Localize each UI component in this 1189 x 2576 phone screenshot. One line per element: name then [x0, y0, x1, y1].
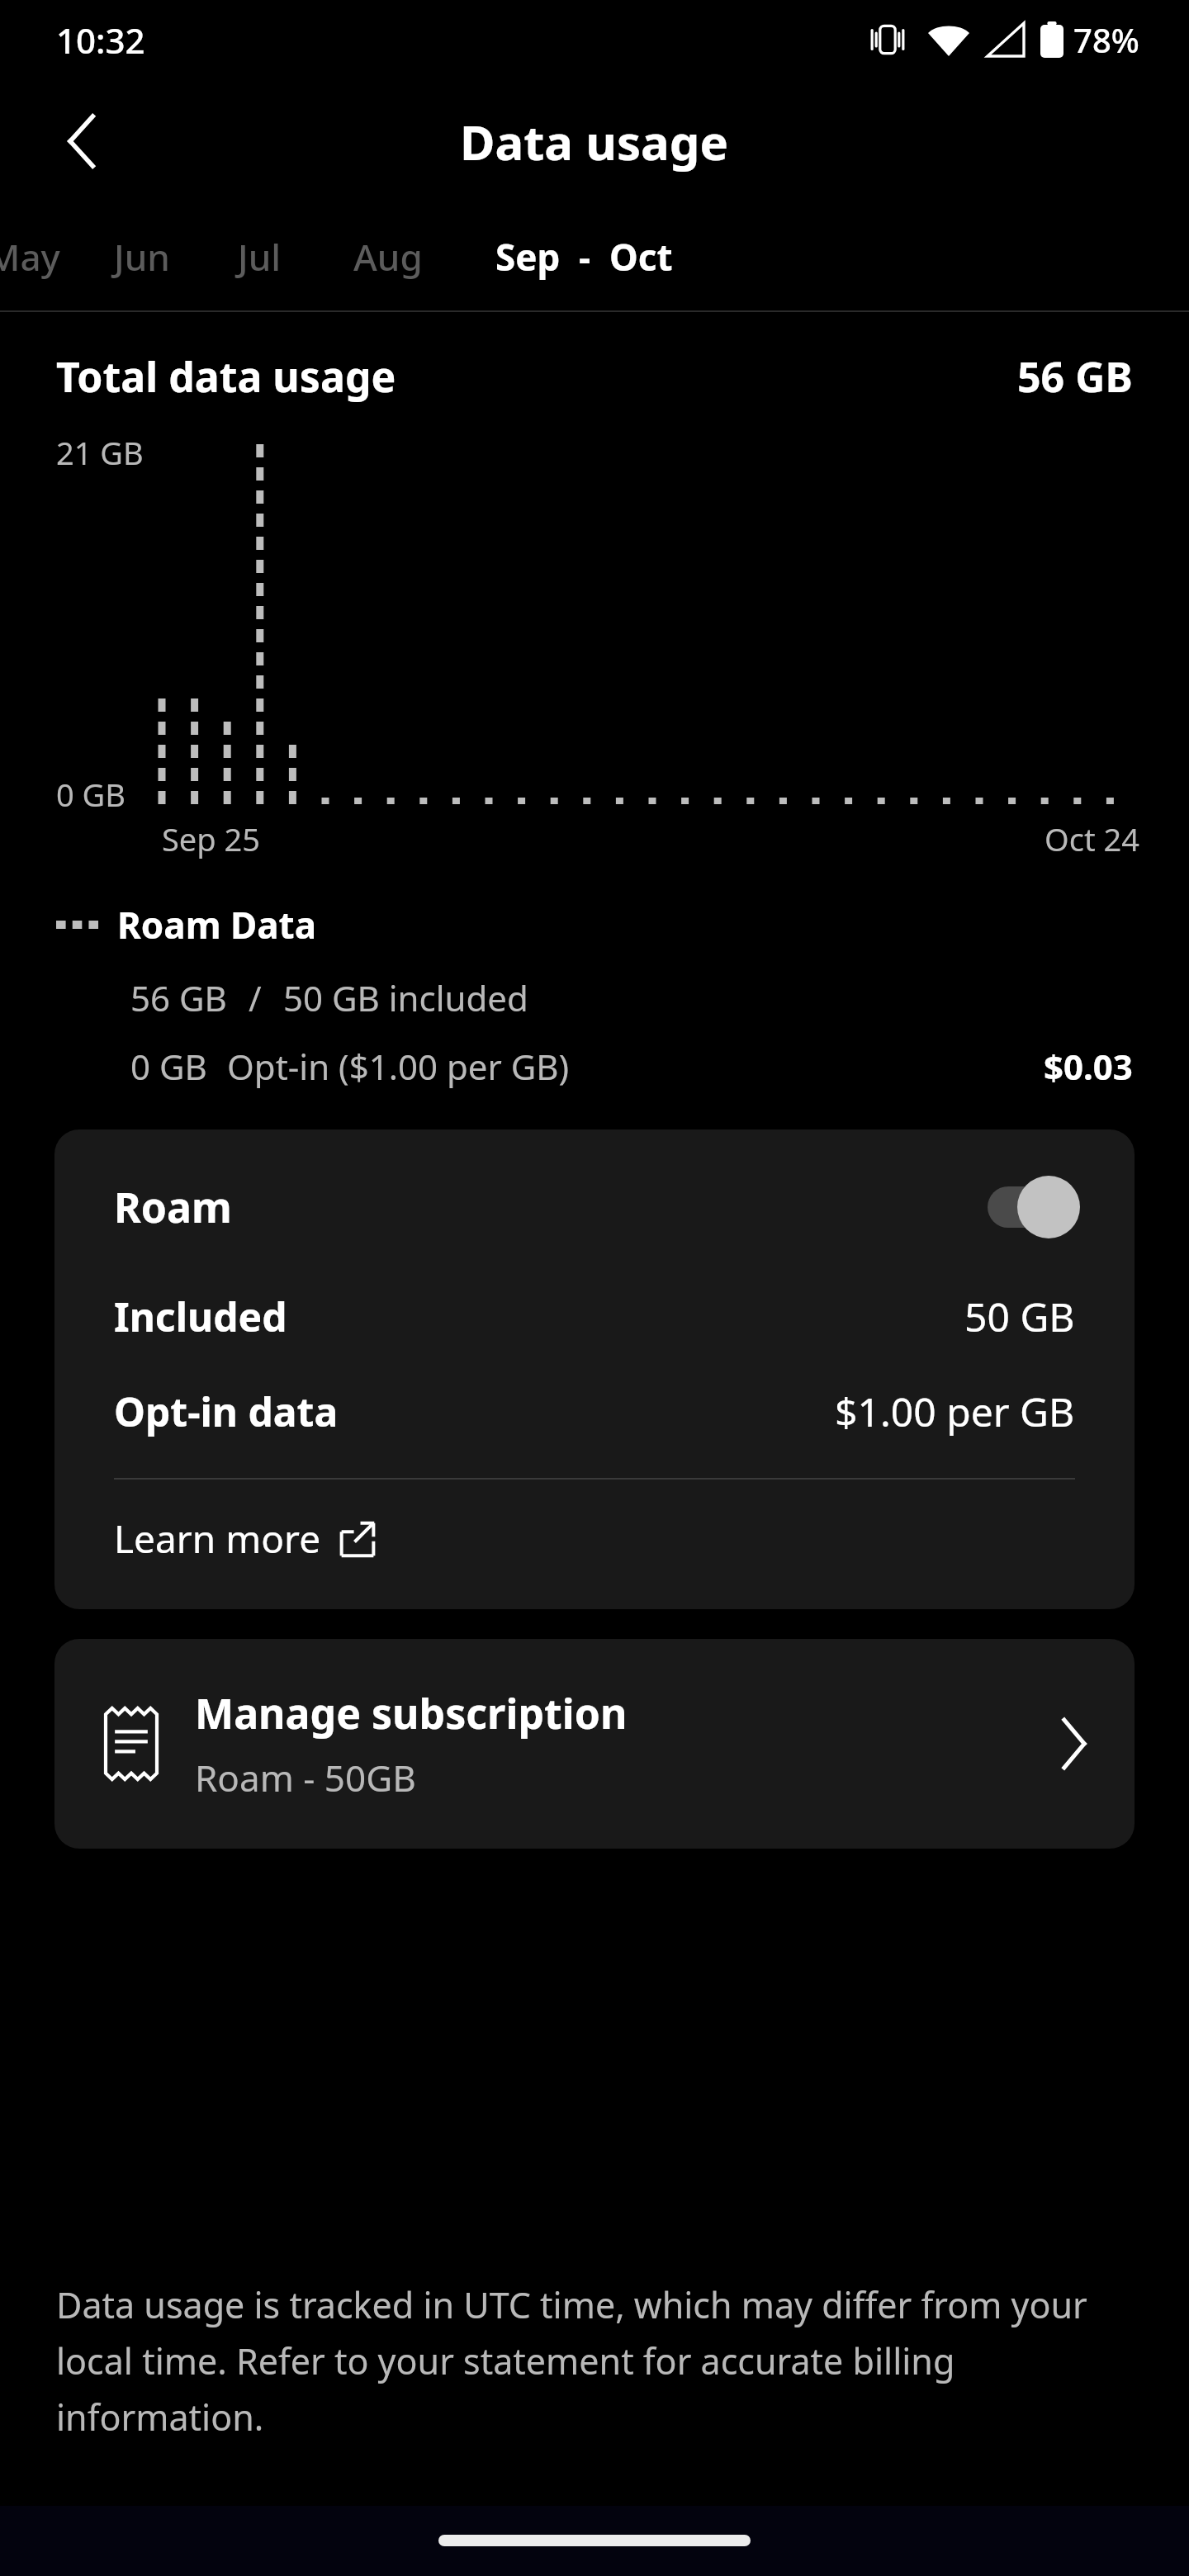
staticText: Sep 25 — [162, 817, 261, 860]
button[interactable]: Aug — [345, 232, 431, 282]
staticText: 10:32 — [56, 17, 145, 64]
staticText: May — [0, 232, 60, 282]
staticText: Included — [114, 1290, 287, 1343]
button[interactable]: Manage subscription — [54, 1639, 1135, 1849]
staticText: Aug — [353, 232, 423, 282]
staticText: $0.03 — [1044, 1043, 1133, 1090]
button[interactable]: May — [0, 232, 69, 282]
button[interactable]: Sep — [489, 232, 680, 282]
staticText: 21 GB — [56, 431, 144, 474]
staticText: Jun — [114, 232, 170, 282]
staticText: $1.00 per GB — [835, 1385, 1075, 1438]
staticText: Opt-in ($1.00 per GB) — [227, 1043, 570, 1090]
staticText: Oct 24 — [1045, 817, 1139, 860]
button[interactable]: Roam toggle — [988, 1176, 1080, 1238]
staticText: Opt-in data — [114, 1385, 339, 1438]
staticText: / — [249, 974, 262, 1021]
staticText: Roam Data — [117, 900, 317, 949]
staticText: Data usage — [460, 109, 729, 174]
staticText: 56 GB — [130, 974, 227, 1021]
staticText: Manage subscription — [195, 1685, 628, 1741]
staticText: 56 GB — [1017, 348, 1133, 405]
staticText: Sep — [495, 232, 561, 282]
staticText: 50 GB — [964, 1290, 1075, 1343]
button[interactable]: Learn more — [114, 1513, 376, 1565]
staticText: 78% — [1073, 17, 1139, 62]
staticText: Total data usage — [56, 348, 396, 405]
button[interactable]: Roam — [114, 1176, 1080, 1238]
staticText: 50 GB included — [283, 974, 528, 1021]
staticText: Roam — [114, 1179, 232, 1235]
button[interactable]: Jun — [106, 232, 178, 282]
staticText: Data usage is tracked in UTC time, which… — [56, 2280, 1123, 2441]
staticText: Oct — [609, 232, 673, 282]
staticText: Jul — [238, 232, 282, 282]
button[interactable]: Back — [43, 102, 122, 181]
staticText: Roam - 50GB — [195, 1753, 416, 1802]
staticText: 0 GB — [130, 1043, 207, 1090]
staticText: Learn more — [114, 1513, 321, 1565]
staticText: 0 GB — [56, 773, 126, 816]
staticText: - — [579, 232, 591, 282]
button[interactable]: Jul — [230, 232, 290, 282]
